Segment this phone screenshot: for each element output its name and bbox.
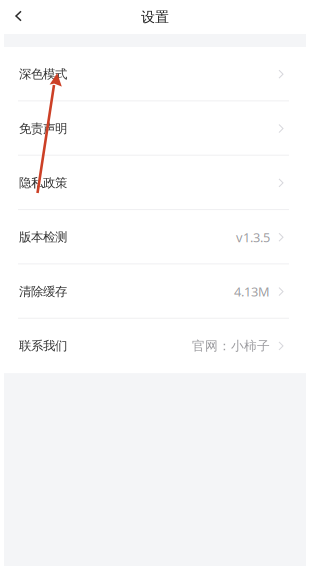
staticText: 设置 [141,8,169,26]
staticText: v1.3.5 [236,228,270,246]
button[interactable]: 清除缓存 [4,264,306,319]
button[interactable]: 联系我们 [4,319,306,373]
button[interactable]: 深色模式 [4,47,306,101]
staticText: 免责声明 [19,121,67,136]
staticText: 深色模式 [19,66,67,82]
staticText: 清除缓存 [19,284,67,299]
button[interactable]: 版本检测 [4,210,306,264]
staticText: 联系我们 [19,338,67,354]
button[interactable]: 隐私政策 [4,156,306,210]
staticText: 版本检测 [19,229,67,245]
staticText: 隐私政策 [19,175,67,191]
staticText: 4.13M [234,283,270,300]
staticText: 官网：小柿子 [192,338,270,354]
button[interactable]: Back [4,1,34,33]
button[interactable]: 免责声明 [4,101,306,156]
